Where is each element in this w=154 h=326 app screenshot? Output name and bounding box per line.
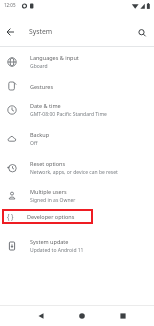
button[interactable]: { } <box>2 209 93 224</box>
button[interactable] <box>102 306 143 326</box>
staticText: GMT-08:00 Pacific Standard Time <box>30 111 107 118</box>
button[interactable] <box>20 306 61 326</box>
button[interactable] <box>134 21 154 41</box>
staticText: 12:05 <box>4 2 16 8</box>
staticText: Date & time <box>30 102 61 109</box>
staticText: Off <box>30 140 38 147</box>
staticText: Multiple users <box>30 188 67 195</box>
staticText: Developer options <box>27 213 75 220</box>
staticText: System update <box>30 238 69 245</box>
button[interactable]: System update <box>0 231 154 260</box>
staticText: Reset options <box>30 160 66 167</box>
staticText: Backup <box>30 131 50 138</box>
button[interactable]: Gestures <box>0 76 154 96</box>
button[interactable]: Date & time <box>0 96 154 124</box>
button[interactable]: Multiple users <box>0 182 154 209</box>
staticText: { } <box>7 212 14 221</box>
button[interactable]: Backup <box>0 124 154 153</box>
staticText: Languages & input <box>30 54 79 61</box>
staticText: Gboard <box>30 63 48 70</box>
staticText: System <box>29 27 53 36</box>
button[interactable] <box>0 21 20 41</box>
button[interactable]: Languages & input <box>0 47 154 76</box>
staticText: Signed in as Owner <box>30 197 76 204</box>
button[interactable]: Reset options <box>0 153 154 182</box>
staticText: Network, apps, or device can be reset <box>30 169 118 176</box>
staticText: Gestures <box>30 83 54 90</box>
staticText: Updated to Android 11 <box>30 247 84 254</box>
button[interactable] <box>61 306 102 326</box>
